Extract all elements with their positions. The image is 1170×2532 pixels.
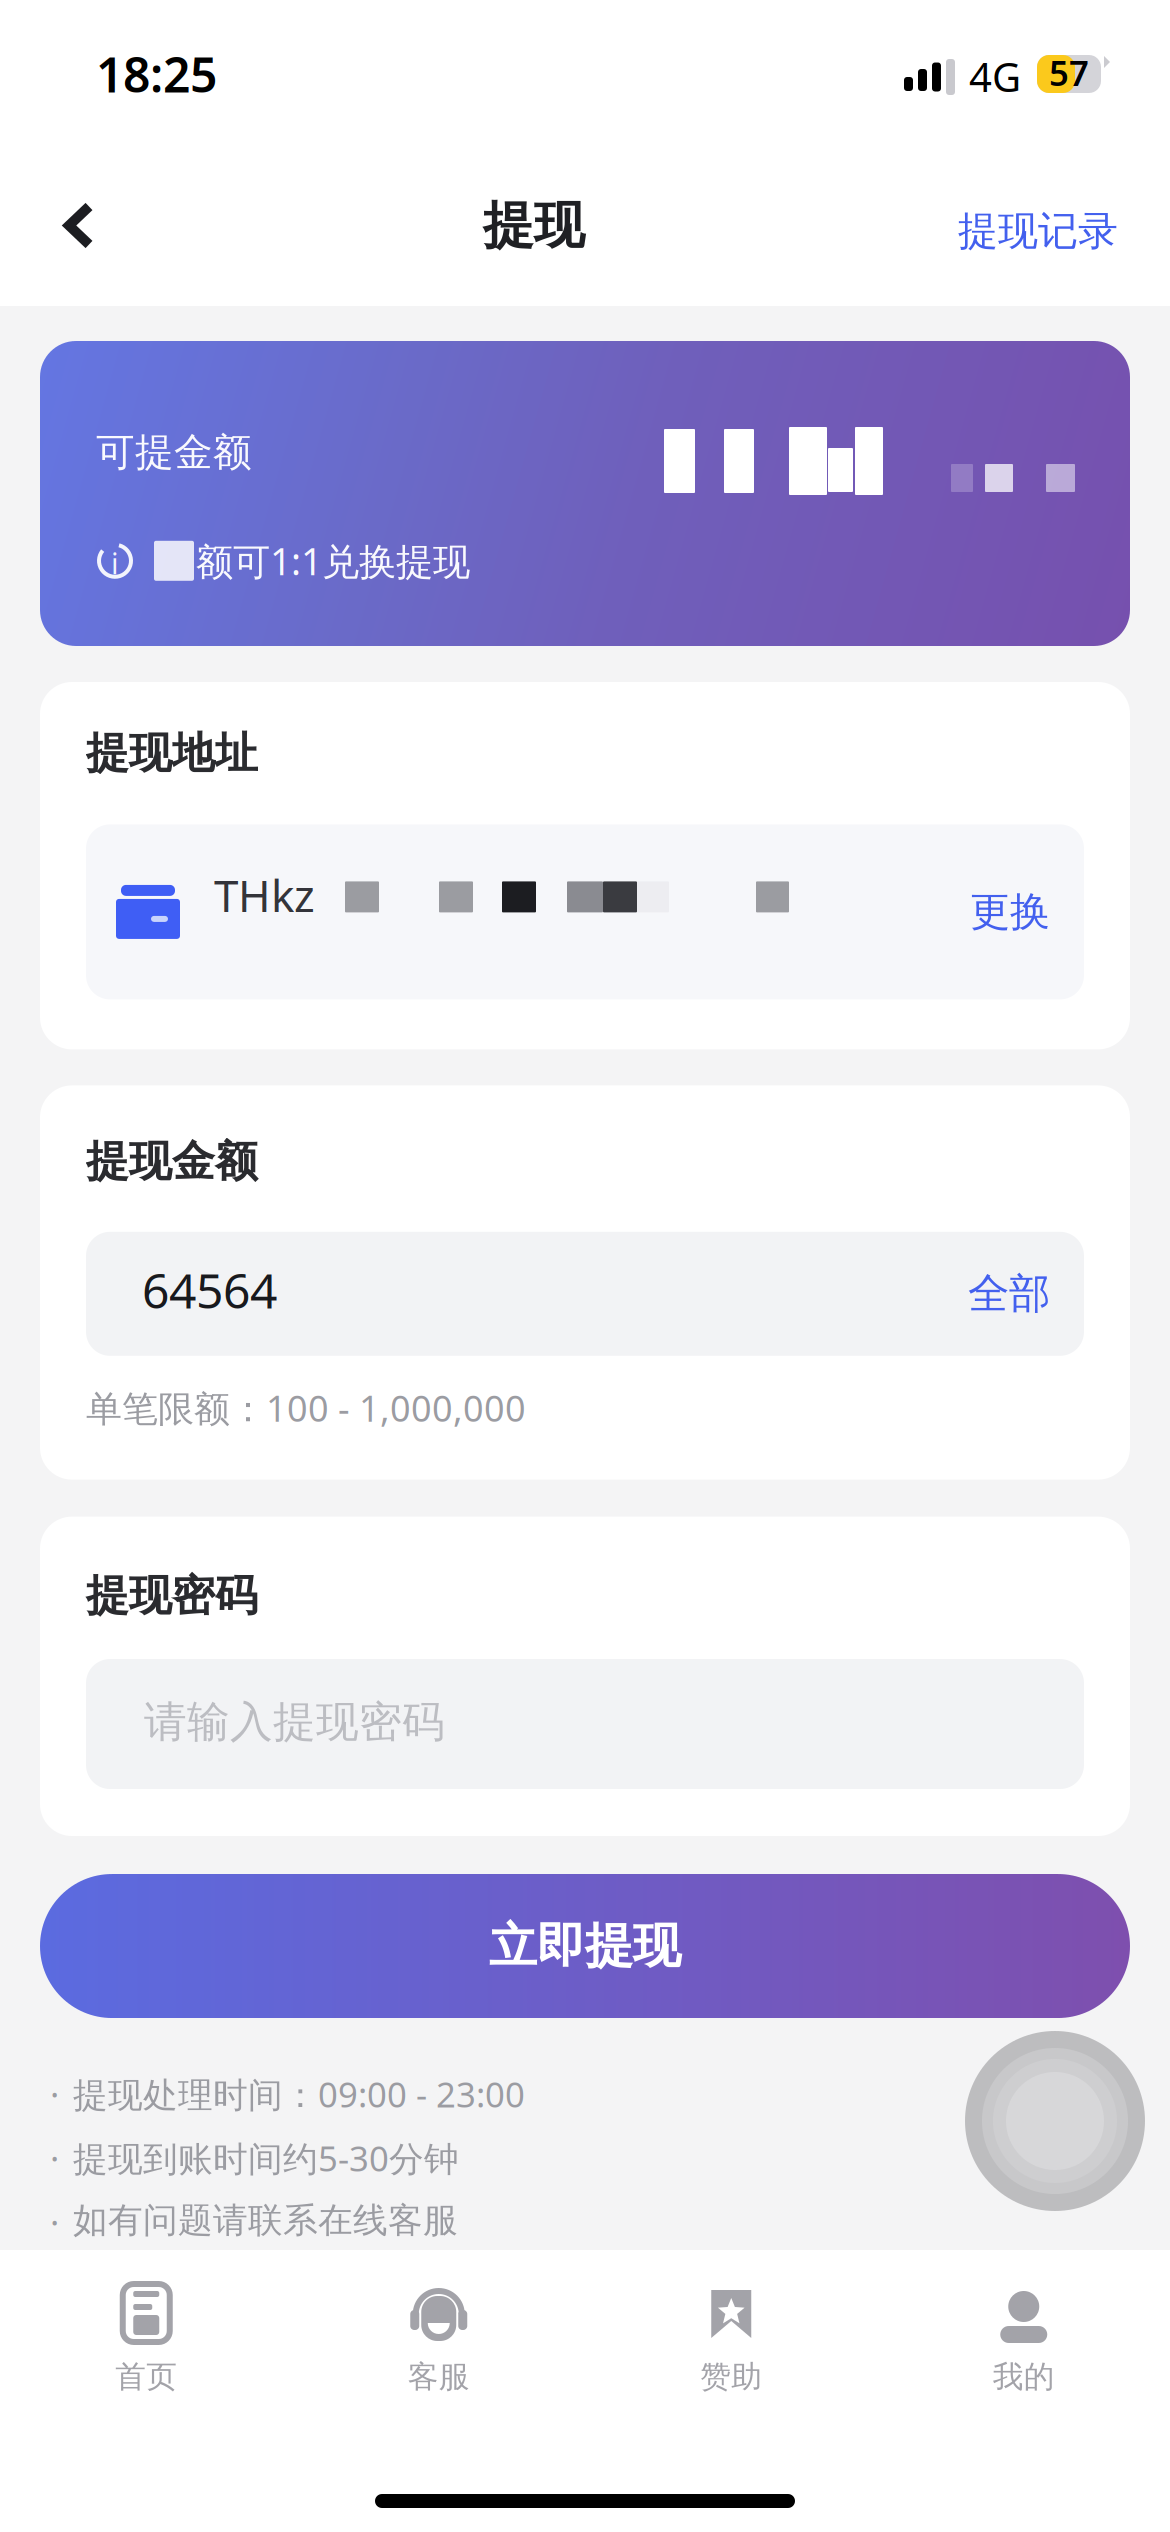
staticText: 18:25: [96, 42, 217, 106]
button[interactable]: 赞助: [585, 2282, 877, 2396]
staticText: 更换: [970, 887, 1050, 936]
staticText: 额可1:1兑换提现: [196, 536, 470, 586]
staticText: 提现地址: [86, 727, 258, 779]
button[interactable]: 全部: [968, 1246, 1084, 1341]
staticText: 立即提现: [489, 1916, 681, 1975]
staticText: THkz: [214, 866, 315, 924]
staticText: i: [111, 543, 119, 582]
staticText: 提现金额: [86, 1135, 258, 1188]
button[interactable]: 提现记录: [950, 206, 1126, 286]
staticText: ·: [50, 2071, 59, 2117]
staticText: 64564: [142, 1258, 277, 1322]
staticText: ·: [50, 2135, 59, 2181]
staticText: 提现: [483, 194, 585, 257]
button[interactable]: 客服: [292, 2282, 585, 2396]
button[interactable]: THkz: [86, 824, 1084, 999]
staticText: 4G: [969, 50, 1021, 103]
staticText: 57: [1049, 49, 1089, 95]
staticText: 如有问题请联系在线客服: [73, 2199, 458, 2242]
staticText: 单笔限额：100 - 1,000,000: [86, 1384, 526, 1432]
staticText: 我的: [993, 2358, 1055, 2396]
button[interactable]: 首页: [0, 2282, 292, 2396]
button[interactable]: 请输入提现密码: [86, 1659, 1084, 1789]
staticText: 请输入提现密码: [144, 1696, 445, 1748]
staticText: 提现密码: [86, 1570, 258, 1622]
staticText: 提现处理时间：09:00 - 23:00: [73, 2071, 525, 2117]
button[interactable]: 立即提现: [40, 1874, 1130, 2018]
staticText: 提现记录: [958, 206, 1118, 256]
staticText: 提现到账时间约5-30分钟: [73, 2135, 459, 2181]
staticText: 赞助: [700, 2358, 762, 2396]
staticText: 首页: [115, 2358, 177, 2396]
staticText: 全部: [968, 1268, 1050, 1319]
button[interactable]: 返回: [42, 206, 138, 286]
staticText: ·: [50, 2199, 59, 2245]
staticText: 客服: [408, 2358, 470, 2396]
staticText: 可提金额: [96, 428, 252, 476]
button[interactable]: 我的: [877, 2282, 1170, 2396]
